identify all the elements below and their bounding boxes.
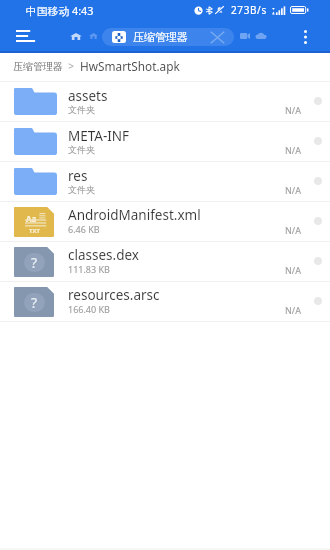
staticText: 压缩管理器 [133, 30, 188, 44]
button[interactable]: Select [314, 97, 322, 105]
staticText: 文件夹 [68, 184, 95, 195]
staticText: N/A [285, 184, 301, 196]
staticText: 111.83 KB [68, 263, 110, 275]
button[interactable]: Select [314, 137, 322, 145]
button[interactable]: Select [314, 217, 322, 225]
staticText: Aa [26, 213, 37, 224]
staticText: ? [31, 253, 38, 272]
staticText: META-INF [68, 127, 130, 145]
button[interactable]: Menu [9, 20, 41, 53]
staticText: 文件夹 [68, 104, 95, 115]
button[interactable]: 压缩管理器 [13, 60, 63, 73]
staticText: res [68, 167, 88, 185]
staticText: > [63, 59, 80, 73]
staticText: N/A [285, 104, 301, 116]
staticText: 6.46 KB [68, 223, 100, 235]
button[interactable]: Tab [87, 26, 100, 48]
staticText: N/A [285, 264, 301, 276]
button[interactable]: res [0, 162, 330, 201]
button[interactable]: 压缩管理器 [102, 28, 234, 46]
staticText: 166.40 KB [68, 303, 110, 315]
staticText: AndroidManifest.xml [68, 206, 201, 224]
button[interactable]: Downloads [238, 26, 251, 48]
staticText: N/A [285, 224, 301, 236]
staticText: classes.dex [68, 246, 139, 264]
button[interactable]: ? [0, 282, 330, 321]
staticText: resources.arsc [68, 286, 160, 304]
staticText: ? [31, 293, 38, 312]
button[interactable]: Select [314, 257, 322, 265]
staticText: 273B/s [231, 3, 267, 17]
staticText: N/A [285, 304, 301, 316]
button[interactable]: ? [0, 242, 330, 281]
button[interactable]: Home [68, 26, 83, 48]
staticText: 中国移动 4:43 [26, 3, 94, 18]
staticText: 文件夹 [68, 144, 95, 155]
button[interactable]: HwSmartShot.apk [80, 58, 180, 74]
button[interactable]: Select [314, 177, 322, 185]
button[interactable]: Aa [0, 202, 330, 241]
button[interactable]: Cloud [254, 26, 268, 48]
staticText: TXT [29, 227, 40, 235]
button[interactable]: assets [0, 82, 330, 121]
button[interactable]: META-INF [0, 122, 330, 161]
button[interactable]: More options [293, 20, 317, 53]
button[interactable]: Select [314, 297, 322, 305]
staticText: assets [68, 87, 108, 105]
staticText: N/A [285, 144, 301, 156]
